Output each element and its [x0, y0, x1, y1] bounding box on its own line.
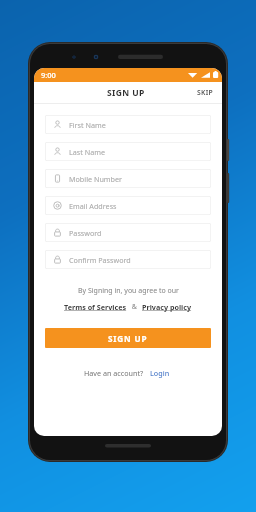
button[interactable]: First Name [45, 115, 211, 134]
staticText: Confirm Password [69, 255, 131, 265]
button[interactable]: Password [45, 223, 211, 242]
button[interactable]: SIGN UP [45, 328, 211, 348]
button[interactable]: Email Address [45, 196, 211, 215]
staticText: Last Name [69, 147, 105, 157]
staticText: SKIP [197, 88, 214, 97]
staticText: First Name [69, 120, 106, 130]
staticText: Terms of Services [64, 302, 127, 312]
staticText: 9:00 [41, 70, 56, 80]
staticText: SIGN UP [107, 87, 145, 99]
button[interactable]: Terms of Services [63, 300, 128, 314]
staticText: Password [69, 228, 102, 238]
button[interactable]: Mobile Number [45, 169, 211, 188]
staticText: By Signing in, you agree to our [78, 286, 179, 296]
staticText: Privacy policy [142, 302, 192, 312]
staticText: & [128, 302, 141, 312]
button[interactable]: Login [148, 365, 172, 381]
button[interactable]: SKIP [189, 84, 222, 101]
staticText: Email Address [69, 201, 117, 211]
button[interactable]: Last Name [45, 142, 211, 161]
staticText: Mobile Number [69, 174, 122, 184]
staticText: Have an account? [84, 368, 144, 378]
button[interactable]: Confirm Password [45, 250, 211, 269]
staticText: Login [150, 368, 170, 378]
staticText: SIGN UP [108, 333, 148, 344]
button[interactable]: Privacy policy [141, 300, 193, 314]
